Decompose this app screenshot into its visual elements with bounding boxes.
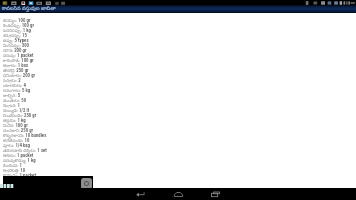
button[interactable]: Back [129,189,151,200]
staticText: బియ్యం: 100 gr కందిపప్పు: 100 gr పెసరపప్… [3,17,47,184]
button[interactable]: Recent apps [204,189,226,200]
staticText: కావలసిన వస్తువుల జాబితా [2,5,56,13]
button[interactable]: Player controls [3,176,93,189]
button[interactable]: బియ్యం: 100 gr కందిపప్పు: 100 gr పెసరపప్… [3,17,356,200]
button[interactable]: Home [167,189,189,200]
button[interactable]: కావలసిన వస్తువుల జాబితా [0,5,356,13]
